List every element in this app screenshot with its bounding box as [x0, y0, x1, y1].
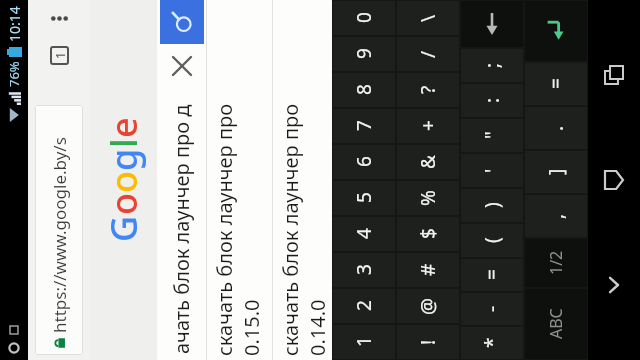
staticText: (: [479, 237, 505, 243]
staticText: 0.14.0: [304, 299, 331, 356]
button[interactable]: .: [525, 107, 587, 149]
button[interactable]: 2: [333, 289, 395, 323]
button[interactable]: =: [461, 259, 523, 291]
staticText: ': [479, 168, 505, 173]
button[interactable]: Backspace: [461, 1, 523, 47]
staticText: 1: [351, 336, 377, 347]
staticText: -: [479, 305, 505, 312]
staticText: ]: [543, 168, 569, 175]
button[interactable]: скачать блок лаунчер про: [273, 0, 332, 360]
button[interactable]: Clear: [160, 44, 204, 88]
staticText: *: [479, 337, 505, 348]
staticText: https://www.google.by/s: [48, 137, 71, 333]
button[interactable]: @: [397, 289, 459, 323]
button[interactable]: ABC: [525, 289, 587, 359]
button[interactable]: /: [397, 37, 459, 71]
staticText: скачать блок лаунчер про: [277, 103, 304, 356]
button[interactable]: Hide keyboard: [588, 255, 640, 315]
staticText: 5: [351, 192, 377, 203]
button[interactable]: $: [397, 217, 459, 251]
staticText: l: [99, 138, 148, 148]
button[interactable]: ": [461, 119, 523, 152]
staticText: @: [415, 297, 441, 315]
staticText: .: [543, 125, 569, 131]
button[interactable]: Recent apps: [588, 45, 640, 105]
staticText: +: [415, 120, 441, 131]
button[interactable]: 3: [333, 253, 395, 287]
button[interactable]: 8: [333, 73, 395, 107]
button[interactable]: Tabs: [45, 42, 73, 70]
staticText: 8: [351, 84, 377, 95]
button[interactable]: -: [461, 293, 523, 325]
button[interactable]: ,: [525, 195, 587, 237]
staticText: 0.15.0: [238, 299, 265, 356]
staticText: %: [415, 190, 441, 206]
button[interactable]: https://www.google.by/s: [35, 105, 83, 355]
button[interactable]: +: [397, 109, 459, 143]
staticText: $: [415, 228, 441, 239]
staticText: 1: [52, 52, 68, 59]
button[interactable]: Enter: [525, 1, 587, 61]
button[interactable]: \: [397, 1, 459, 35]
staticText: o: [99, 193, 148, 215]
button[interactable]: 6: [333, 145, 395, 179]
button[interactable]: (: [461, 224, 523, 257]
button[interactable]: 4: [333, 217, 395, 251]
staticText: !: [415, 339, 441, 345]
staticText: :: [479, 97, 505, 103]
button[interactable]: =: [525, 63, 587, 105]
staticText: 1/2: [545, 250, 567, 275]
staticText: o: [99, 171, 148, 193]
button[interactable]: *: [461, 327, 523, 359]
button[interactable]: %: [397, 181, 459, 215]
button[interactable]: 1: [333, 325, 395, 359]
button[interactable]: &: [397, 145, 459, 179]
staticText: 6: [351, 156, 377, 167]
staticText: =: [479, 269, 505, 280]
staticText: 0: [351, 12, 377, 23]
button[interactable]: 9: [333, 37, 395, 71]
staticText: ;: [479, 62, 505, 68]
staticText: /: [415, 50, 441, 58]
staticText: ачать блок лаунчер про д: [168, 104, 195, 354]
staticText: ABC: [545, 308, 567, 339]
staticText: ,: [543, 213, 569, 219]
staticText: ?: [415, 85, 441, 94]
button[interactable]: ;: [461, 49, 523, 82]
button[interactable]: 1/2: [525, 239, 587, 287]
staticText: 3: [351, 264, 377, 275]
staticText: &: [415, 155, 441, 169]
staticText: =: [543, 78, 569, 89]
staticText: 9: [351, 48, 377, 59]
staticText: скачать блок лаунчер про: [211, 103, 238, 356]
button[interactable]: More options: [44, 4, 74, 34]
staticText: e: [99, 117, 148, 138]
staticText: G: [99, 215, 148, 242]
staticText: 10:14: [5, 6, 24, 42]
button[interactable]: ]: [525, 151, 587, 193]
button[interactable]: !: [397, 325, 459, 359]
staticText: 76%: [5, 61, 23, 87]
staticText: 7: [351, 120, 377, 131]
button[interactable]: #: [397, 253, 459, 287]
staticText: ": [479, 131, 505, 139]
staticText: #: [415, 263, 441, 276]
button[interactable]: Home: [588, 150, 640, 210]
staticText: 4: [351, 228, 377, 239]
staticText: g: [99, 148, 148, 171]
staticText: ): [479, 202, 505, 208]
staticText: \: [415, 14, 441, 22]
button[interactable]: Search: [160, 0, 204, 44]
button[interactable]: скачать блок лаунчер про: [207, 0, 272, 360]
button[interactable]: 0: [333, 1, 395, 35]
button[interactable]: 5: [333, 181, 395, 215]
button[interactable]: :: [461, 84, 523, 117]
staticText: 2: [351, 300, 377, 311]
button[interactable]: ?: [397, 73, 459, 107]
button[interactable]: ': [461, 154, 523, 187]
button[interactable]: 7: [333, 109, 395, 143]
button[interactable]: ): [461, 189, 523, 222]
